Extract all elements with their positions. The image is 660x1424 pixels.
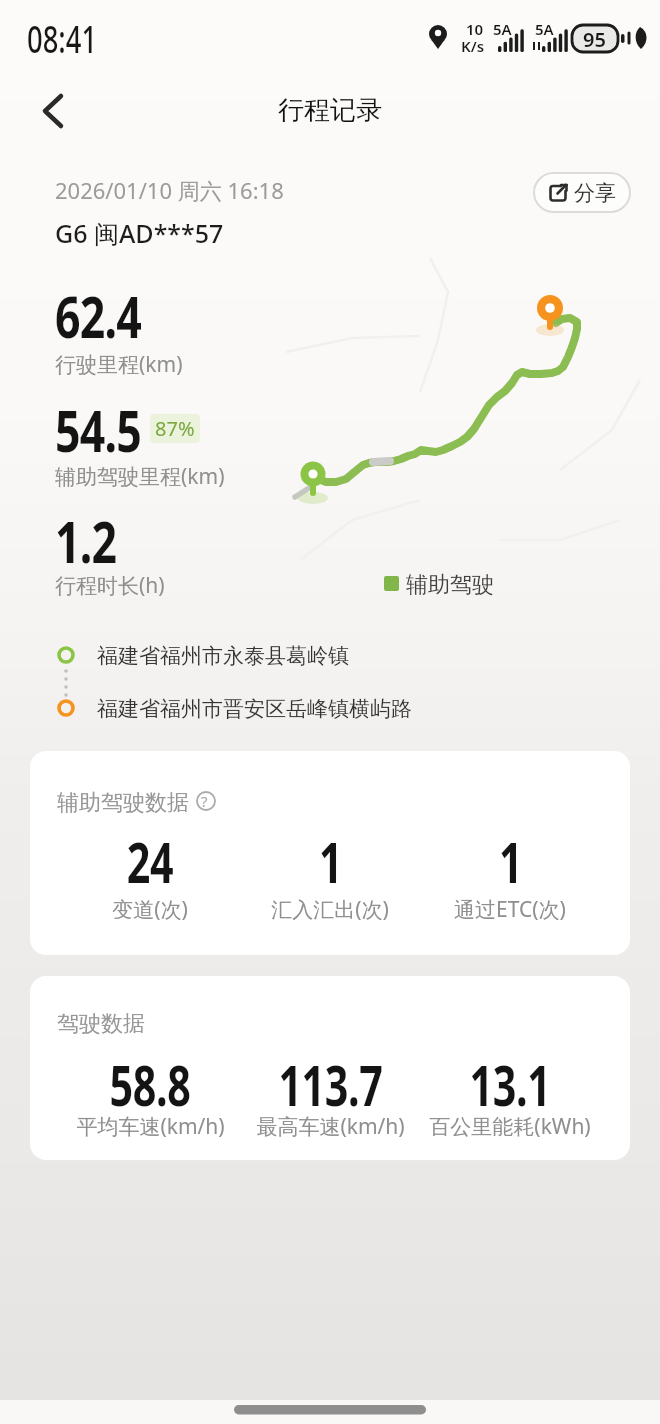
staticText: 平均车速(km/h) <box>76 1112 225 1141</box>
button[interactable] <box>192 787 220 815</box>
button[interactable] <box>30 86 80 136</box>
staticText: 行程时长(h) <box>55 571 165 600</box>
staticText: 百公里能耗(kWh) <box>429 1112 591 1141</box>
staticText: 08:41 <box>27 12 98 64</box>
staticText: 54.5 <box>55 390 141 469</box>
staticText: 24 <box>127 824 173 899</box>
staticText: K/s <box>461 36 485 56</box>
staticText: 辅助驾驶 <box>406 571 494 599</box>
staticText: 福建省福州市晋安区岳峰镇横屿路 <box>97 696 412 722</box>
button[interactable]: 分享 <box>533 172 631 213</box>
staticText: 113.7 <box>278 1047 383 1122</box>
staticText: 87% <box>155 415 195 442</box>
staticText: 辅助驾驶里程(km) <box>55 462 225 491</box>
staticText: 行驶里程(km) <box>55 350 183 379</box>
staticText: 1.2 <box>55 501 117 580</box>
staticText: 行程记录 <box>278 94 382 127</box>
staticText: 5A <box>535 19 554 39</box>
staticText: 通过ETC(次) <box>454 895 566 924</box>
staticText: 最高车速(km/h) <box>256 1112 405 1141</box>
staticText: 驾驶数据 <box>57 1010 145 1038</box>
staticText: 13.1 <box>469 1047 550 1122</box>
staticText: 1 <box>319 824 342 899</box>
staticText: 2026/01/10 周六 16:18 <box>55 175 284 205</box>
staticText: 福建省福州市永泰县葛岭镇 <box>97 643 349 669</box>
staticText: 汇入汇出(次) <box>271 895 389 924</box>
staticText: 95 <box>583 26 606 53</box>
staticText: 5A <box>493 19 512 39</box>
staticText: G6 闽AD***57 <box>55 216 224 250</box>
staticText: ? <box>201 791 208 811</box>
staticText: 变道(次) <box>112 895 188 924</box>
staticText: 分享 <box>574 180 616 206</box>
staticText: 62.4 <box>55 276 141 355</box>
staticText: 58.8 <box>109 1047 190 1122</box>
staticText: 10 <box>466 19 484 39</box>
staticText: 辅助驾驶数据 <box>57 789 189 817</box>
staticText: 1 <box>499 824 522 899</box>
